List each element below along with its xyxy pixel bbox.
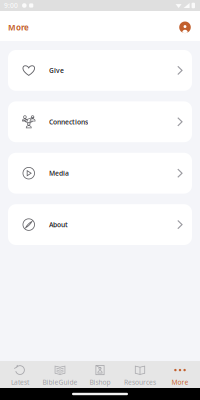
button[interactable]: Media (8, 153, 192, 194)
staticText: Give (49, 66, 64, 75)
button[interactable]: Latest (0, 361, 40, 388)
button[interactable]: Give (8, 50, 192, 91)
button[interactable]: Bishop (80, 361, 120, 388)
button[interactable]: Connections (8, 101, 192, 142)
staticText: Media (49, 169, 69, 178)
staticText: More (8, 22, 29, 33)
staticText: More (171, 378, 188, 387)
staticText: 9:00 (4, 1, 18, 10)
staticText: Resources (124, 378, 156, 387)
staticText: BibleGuide (42, 378, 77, 387)
staticText: Latest (11, 378, 29, 387)
button[interactable]: Resources (120, 361, 160, 388)
staticText: Bishop (89, 378, 110, 387)
button[interactable]: About (8, 204, 192, 245)
button[interactable]: More (160, 361, 200, 388)
staticText: About (49, 220, 68, 229)
button[interactable]: BibleGuide (40, 361, 80, 388)
button[interactable]: Account (176, 18, 194, 36)
staticText: Connections (49, 117, 88, 126)
